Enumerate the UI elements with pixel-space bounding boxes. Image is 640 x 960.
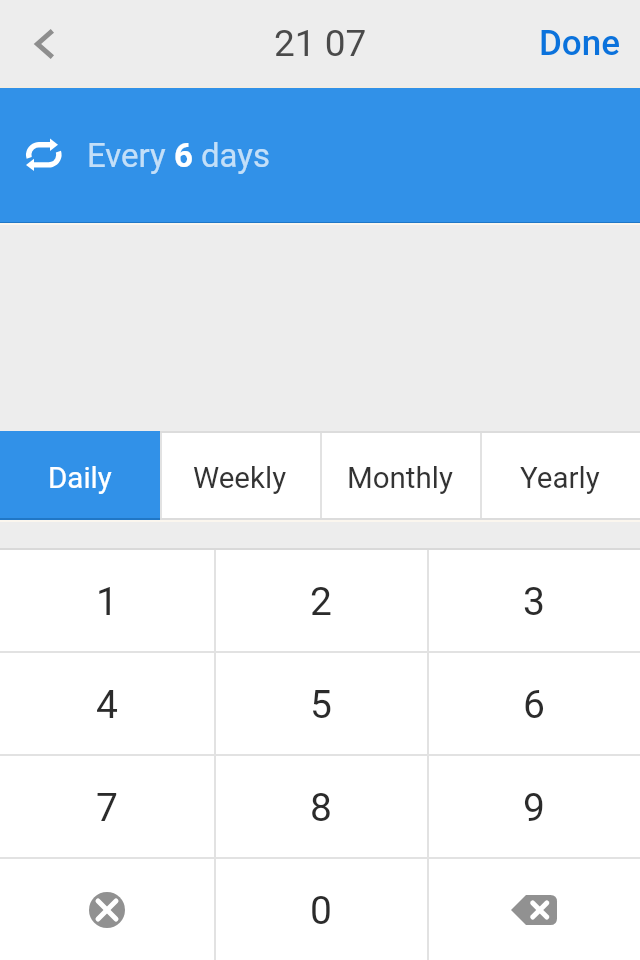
staticText: 7: [96, 785, 118, 831]
button[interactable]: Yearly: [480, 431, 640, 522]
button[interactable]: Monthly: [320, 431, 480, 522]
button[interactable]: 2: [214, 550, 427, 651]
button[interactable]: Weekly: [160, 431, 320, 522]
staticText: 5: [310, 682, 332, 728]
staticText: Done: [539, 23, 621, 64]
button[interactable]: 9: [427, 756, 640, 857]
staticText: 1: [96, 579, 118, 625]
staticText: 0: [310, 888, 332, 934]
button[interactable]: 8: [214, 756, 427, 857]
staticText: 21 07: [274, 22, 367, 65]
staticText: Every 6 days: [87, 136, 270, 175]
staticText: Yearly: [520, 461, 600, 496]
button[interactable]: Daily: [0, 431, 160, 522]
button[interactable]: 1: [0, 550, 214, 651]
button[interactable]: Back: [0, 0, 88, 88]
button[interactable]: 6: [427, 653, 640, 754]
button[interactable]: 7: [0, 756, 214, 857]
button[interactable]: 3: [427, 550, 640, 651]
button[interactable]: 0: [214, 859, 427, 960]
button[interactable]: 5: [214, 653, 427, 754]
button[interactable]: 4: [0, 653, 214, 754]
staticText: Monthly: [347, 461, 453, 496]
button[interactable]: Done: [511, 0, 640, 88]
button[interactable]: Clear: [0, 859, 214, 960]
button[interactable]: Every 6 days: [0, 88, 640, 225]
staticText: 6: [523, 682, 545, 728]
button[interactable]: Backspace: [427, 859, 640, 960]
staticText: 2: [310, 579, 332, 625]
staticText: 4: [96, 682, 118, 728]
staticText: Weekly: [193, 461, 287, 496]
staticText: 3: [523, 579, 545, 625]
staticText: 8: [310, 785, 332, 831]
staticText: Daily: [48, 461, 112, 496]
staticText: 9: [523, 785, 545, 831]
